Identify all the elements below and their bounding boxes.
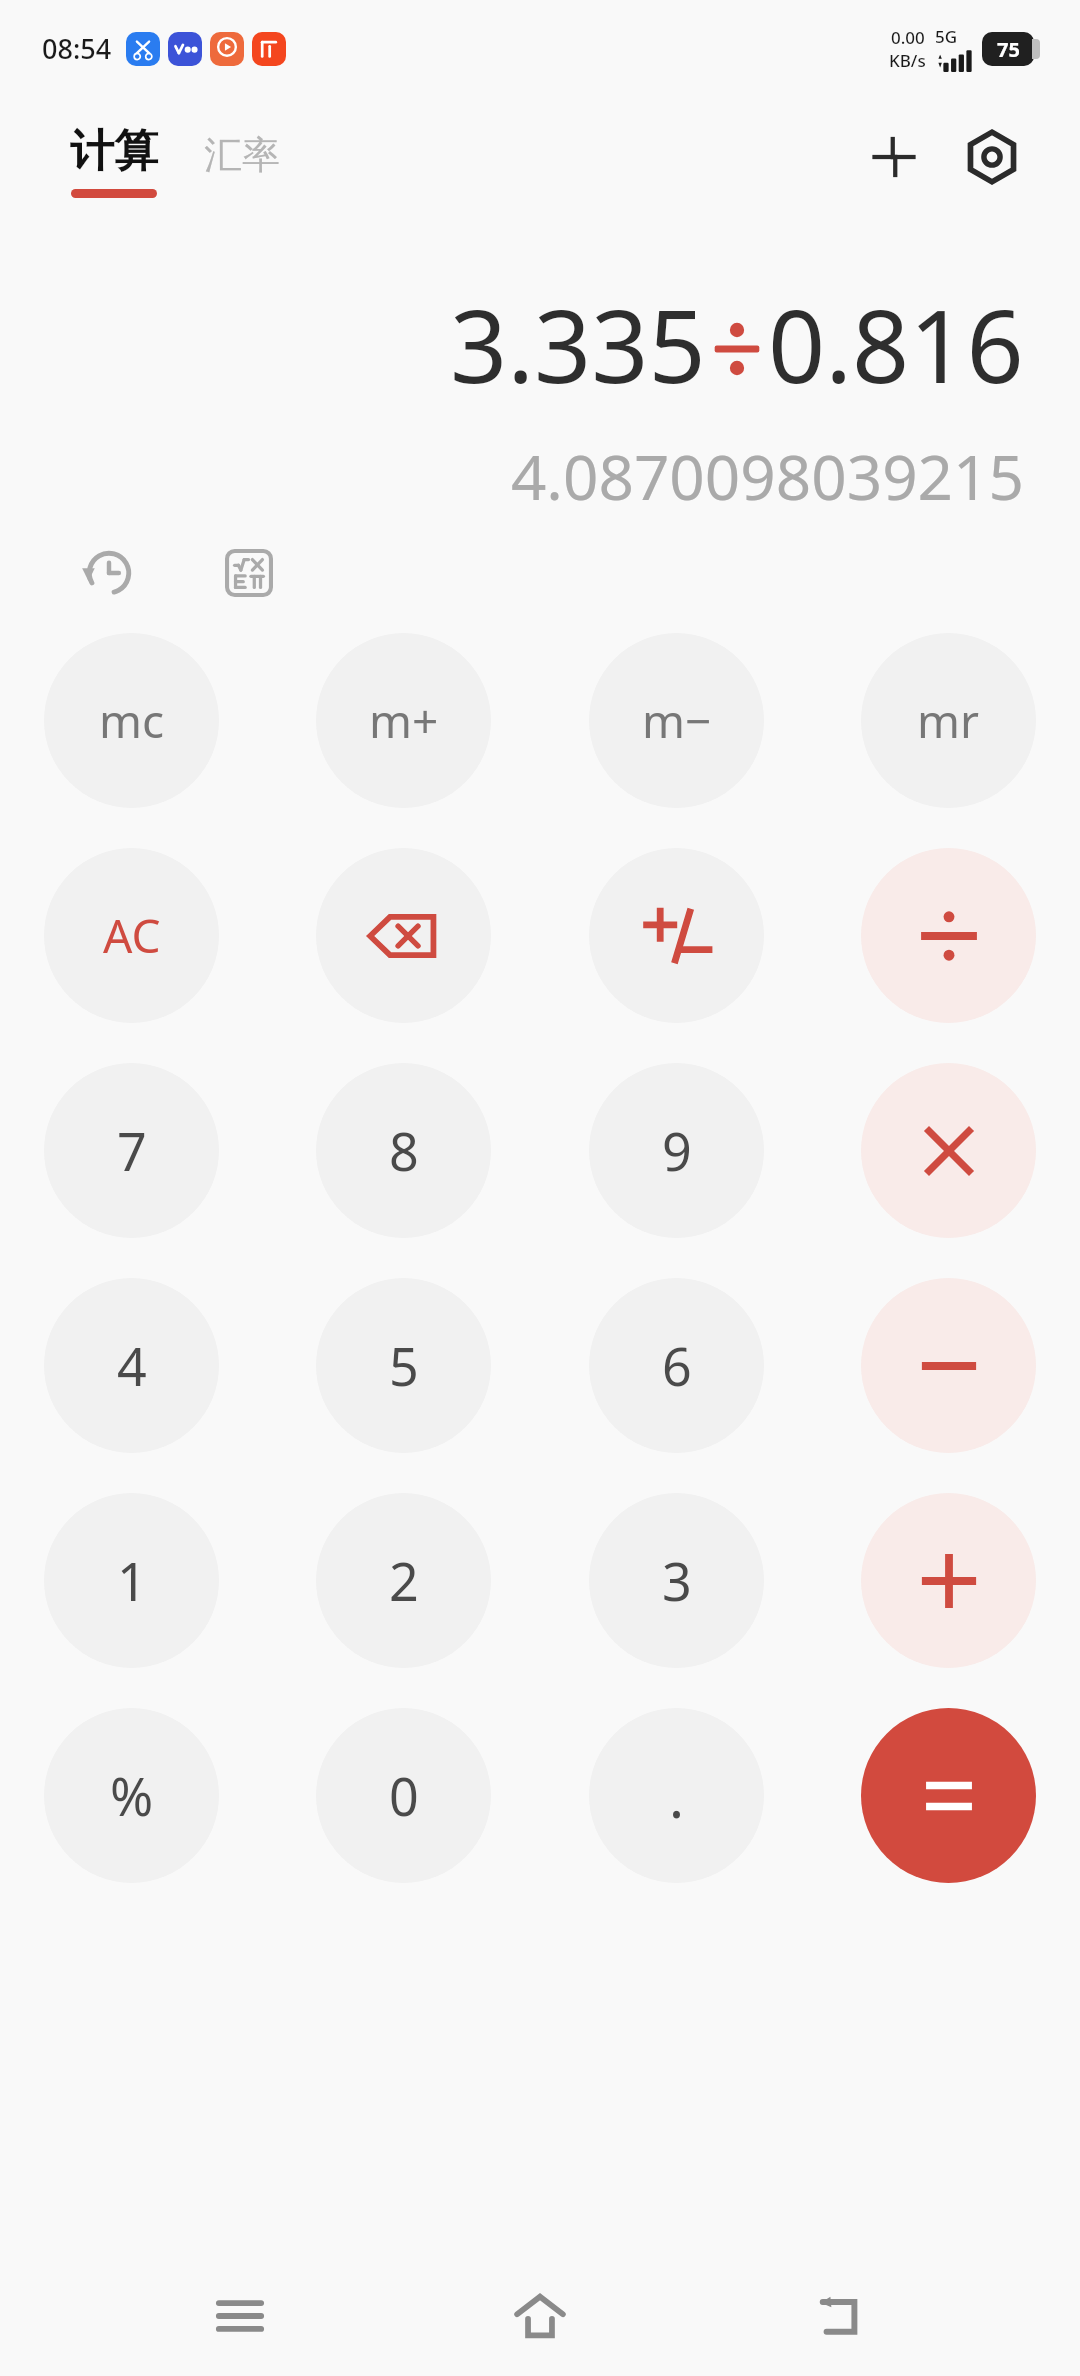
staticText: mr [917,689,980,752]
button[interactable]: 3 [589,1493,764,1668]
button[interactable]: 1 [44,1493,219,1668]
button[interactable]: Divide [861,848,1036,1023]
button[interactable]: 0 [316,1708,491,1883]
button[interactable]: 4 [44,1278,219,1453]
staticText: 4 [117,1330,147,1401]
button[interactable]: 2 [316,1493,491,1668]
button[interactable]: Backspace [316,848,491,1023]
staticText: . [669,1758,685,1834]
staticText: % [110,1760,154,1831]
button[interactable]: History [76,540,142,606]
button[interactable]: m+ [316,633,491,808]
staticText: 汇率 [204,131,280,179]
button[interactable]: 5 [316,1278,491,1453]
button[interactable]: Equals [861,1708,1036,1883]
staticText: m− [642,689,712,752]
button[interactable]: mr [861,633,1036,808]
button[interactable]: Scientific [216,540,282,606]
staticText: KB/s [889,49,926,72]
staticText: mc [99,689,165,752]
button[interactable]: Multiply [861,1063,1036,1238]
button[interactable]: Settings [950,115,1034,199]
staticText: 08:54 [42,30,112,67]
button[interactable]: Subtract [861,1278,1036,1453]
button[interactable]: Add [861,1493,1036,1668]
button[interactable]: 汇率 [200,150,284,198]
staticText: m+ [369,689,439,752]
button[interactable]: 8 [316,1063,491,1238]
staticText: 0.816 [768,276,1024,412]
button[interactable]: % [44,1708,219,1883]
staticText: 3.335 [450,276,706,412]
staticText: 9 [662,1115,692,1186]
button[interactable]: AC [44,848,219,1023]
staticText: 1 [117,1545,147,1616]
button[interactable]: m− [589,633,764,808]
button[interactable]: 6 [589,1278,764,1453]
staticText: 4.0870098039215 [0,434,1024,518]
staticText: 3 [662,1545,692,1616]
button[interactable]: 7 [44,1063,219,1238]
button[interactable]: . [589,1708,764,1883]
button[interactable]: Back [780,2256,900,2376]
staticText: AC [103,904,161,967]
staticText: 计算 [70,124,158,179]
button[interactable]: mc [44,633,219,808]
staticText: 8 [389,1115,419,1186]
button[interactable]: Recents [180,2256,300,2376]
button[interactable]: Plus minus [589,848,764,1023]
staticText: 6 [662,1330,692,1401]
staticText: 2 [389,1545,419,1616]
button[interactable]: 9 [589,1063,764,1238]
staticText: 0 [389,1760,419,1831]
button[interactable]: 计算 [66,124,162,198]
button[interactable]: Collapse [852,115,936,199]
staticText: 5G [935,25,958,48]
staticText: 7 [117,1115,147,1186]
staticText: 5 [389,1330,419,1401]
button[interactable]: Home [480,2256,600,2376]
staticText: 75 [997,36,1020,63]
staticText: 0.00 [891,26,925,49]
